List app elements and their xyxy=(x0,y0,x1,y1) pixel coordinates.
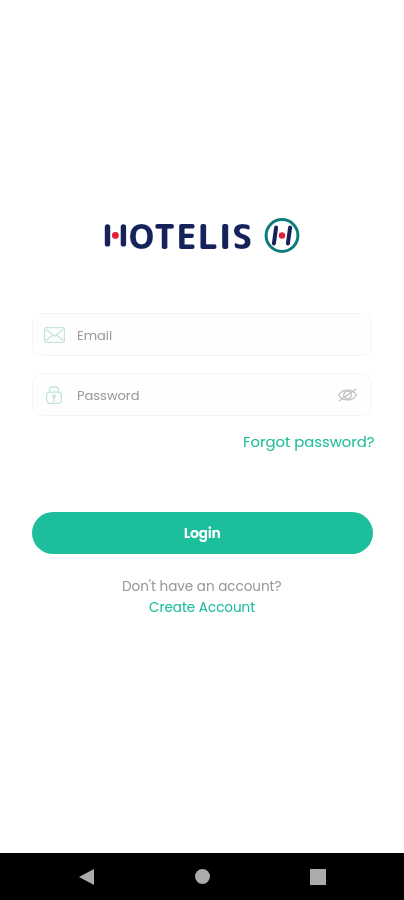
staticText: Email xyxy=(77,326,113,344)
staticText: Password xyxy=(77,386,140,404)
button[interactable]: Login xyxy=(32,512,373,554)
staticText: Forgot password? xyxy=(243,431,375,452)
button[interactable]: Create Account xyxy=(149,598,256,617)
staticText: Don't have an account? xyxy=(122,577,282,596)
button[interactable]: Home xyxy=(178,853,226,900)
button[interactable]: Show password xyxy=(334,382,360,408)
button[interactable]: Back xyxy=(62,853,110,900)
staticText: Login xyxy=(184,524,221,543)
staticText: Create Account xyxy=(149,598,256,617)
button[interactable]: Password xyxy=(32,373,372,416)
button[interactable]: Recent apps xyxy=(294,853,342,900)
button[interactable]: Email xyxy=(32,313,372,356)
staticText: OTELIS xyxy=(129,213,254,259)
button[interactable]: Forgot password? xyxy=(243,431,375,452)
